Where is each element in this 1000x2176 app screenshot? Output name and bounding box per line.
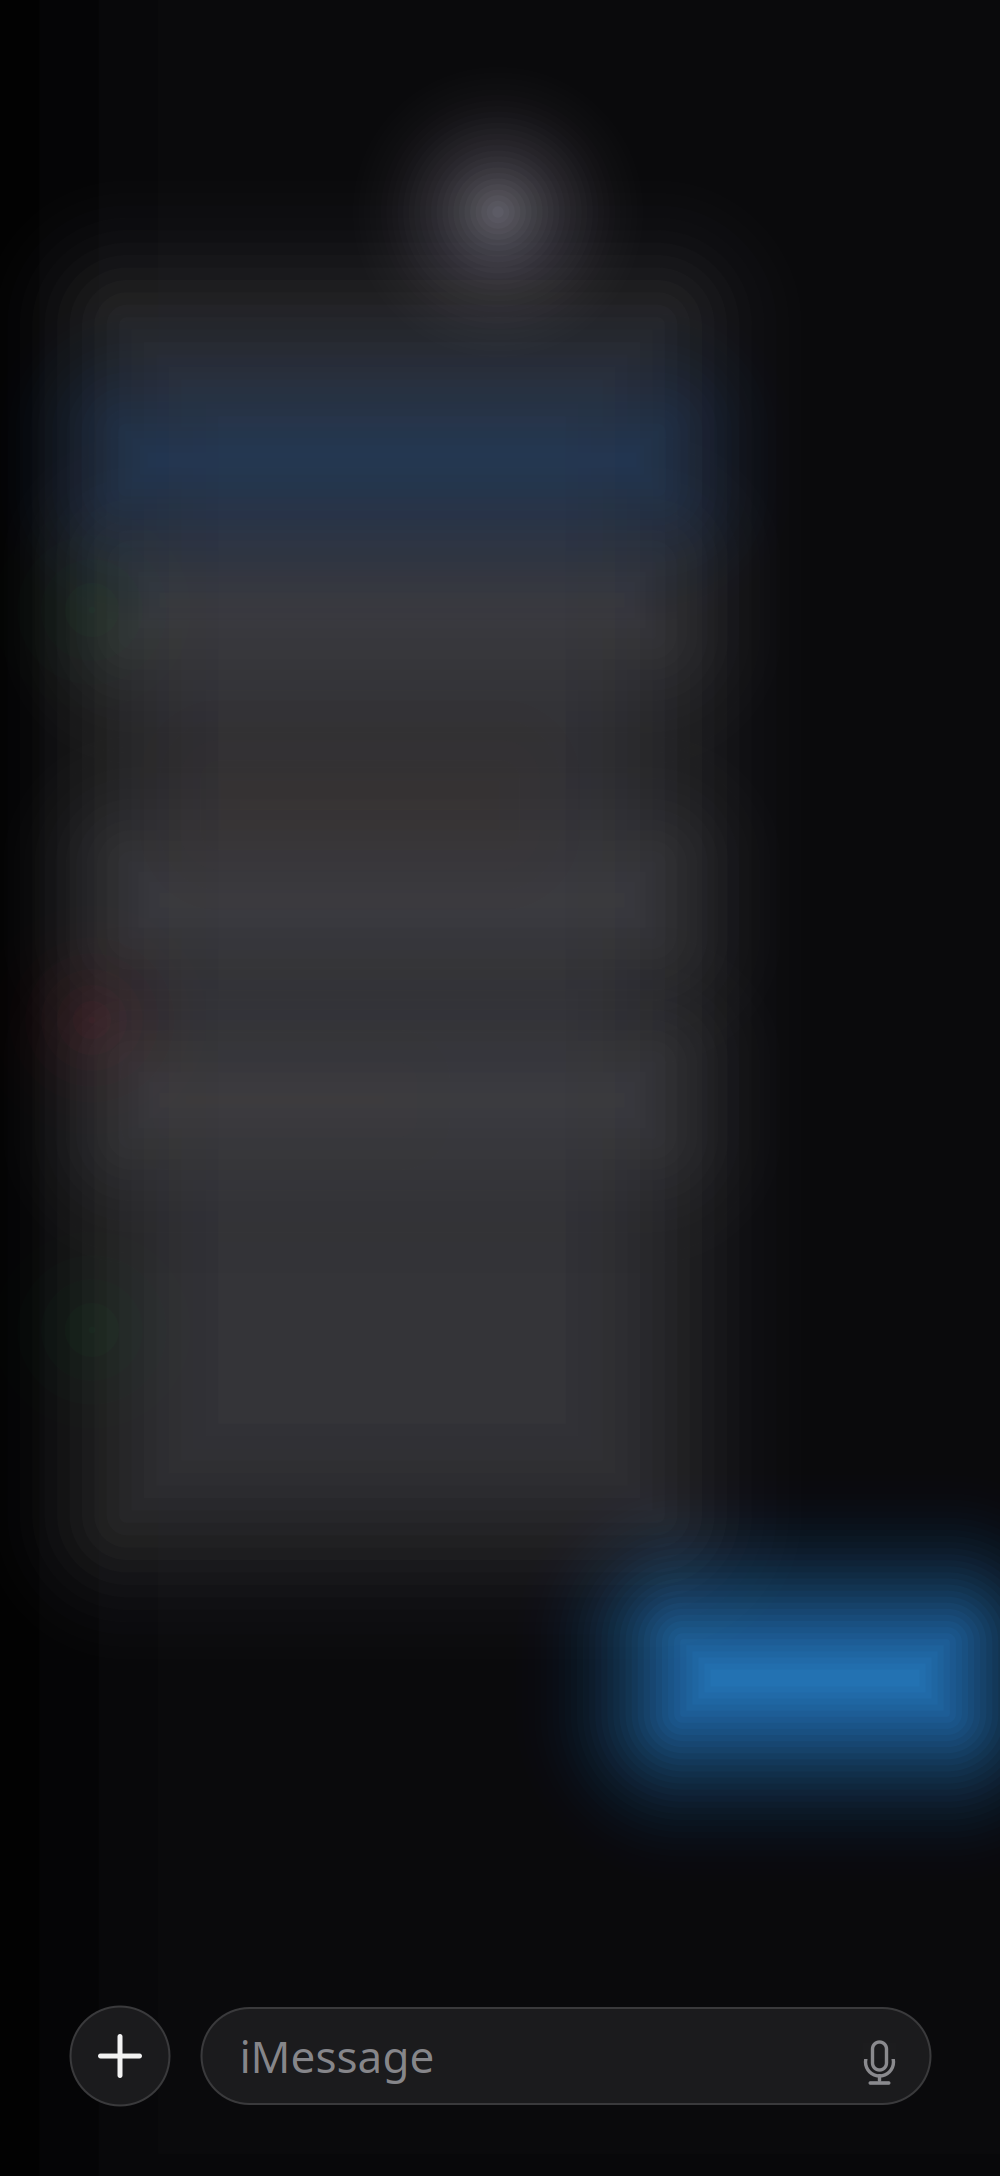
- staticText: iMessage: [239, 2027, 434, 2085]
- button[interactable]: Add attachment: [70, 2006, 169, 2105]
- button[interactable]: iMessage: [201, 2008, 930, 2104]
